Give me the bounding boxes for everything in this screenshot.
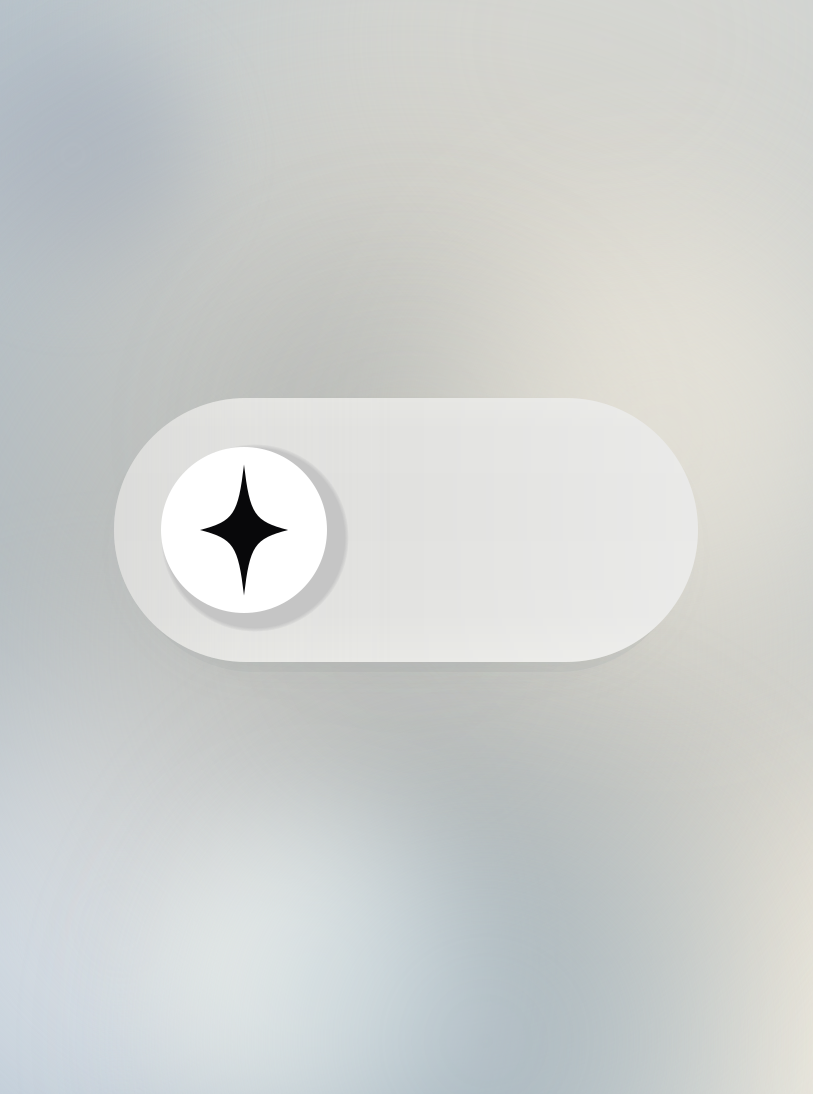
button[interactable]: Toggle <box>114 398 698 662</box>
